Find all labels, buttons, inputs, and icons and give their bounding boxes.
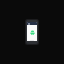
button[interactable]: Bottom navigation [27,39,37,41]
button[interactable]: App bar [27,22,37,25]
button[interactable]: Phone device preview [25,19,39,45]
button[interactable]: Android logo [30,30,35,35]
